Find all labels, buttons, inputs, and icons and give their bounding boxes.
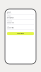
staticText: Jane A. [7,12,11,14]
button[interactable]: Phone [7,20,34,25]
staticText: 555 0199 [7,22,14,24]
staticText: jane@mail [7,17,13,19]
staticText: Email [7,15,10,17]
staticText: Name [7,10,11,12]
button[interactable]: Email [7,15,34,20]
button[interactable]: Name [7,10,34,15]
button[interactable]: City [7,25,34,30]
staticText: Continue [17,33,24,34]
staticText: City [7,25,9,27]
staticText: Cupertino [7,27,14,29]
button[interactable]: Continue [7,32,34,35]
